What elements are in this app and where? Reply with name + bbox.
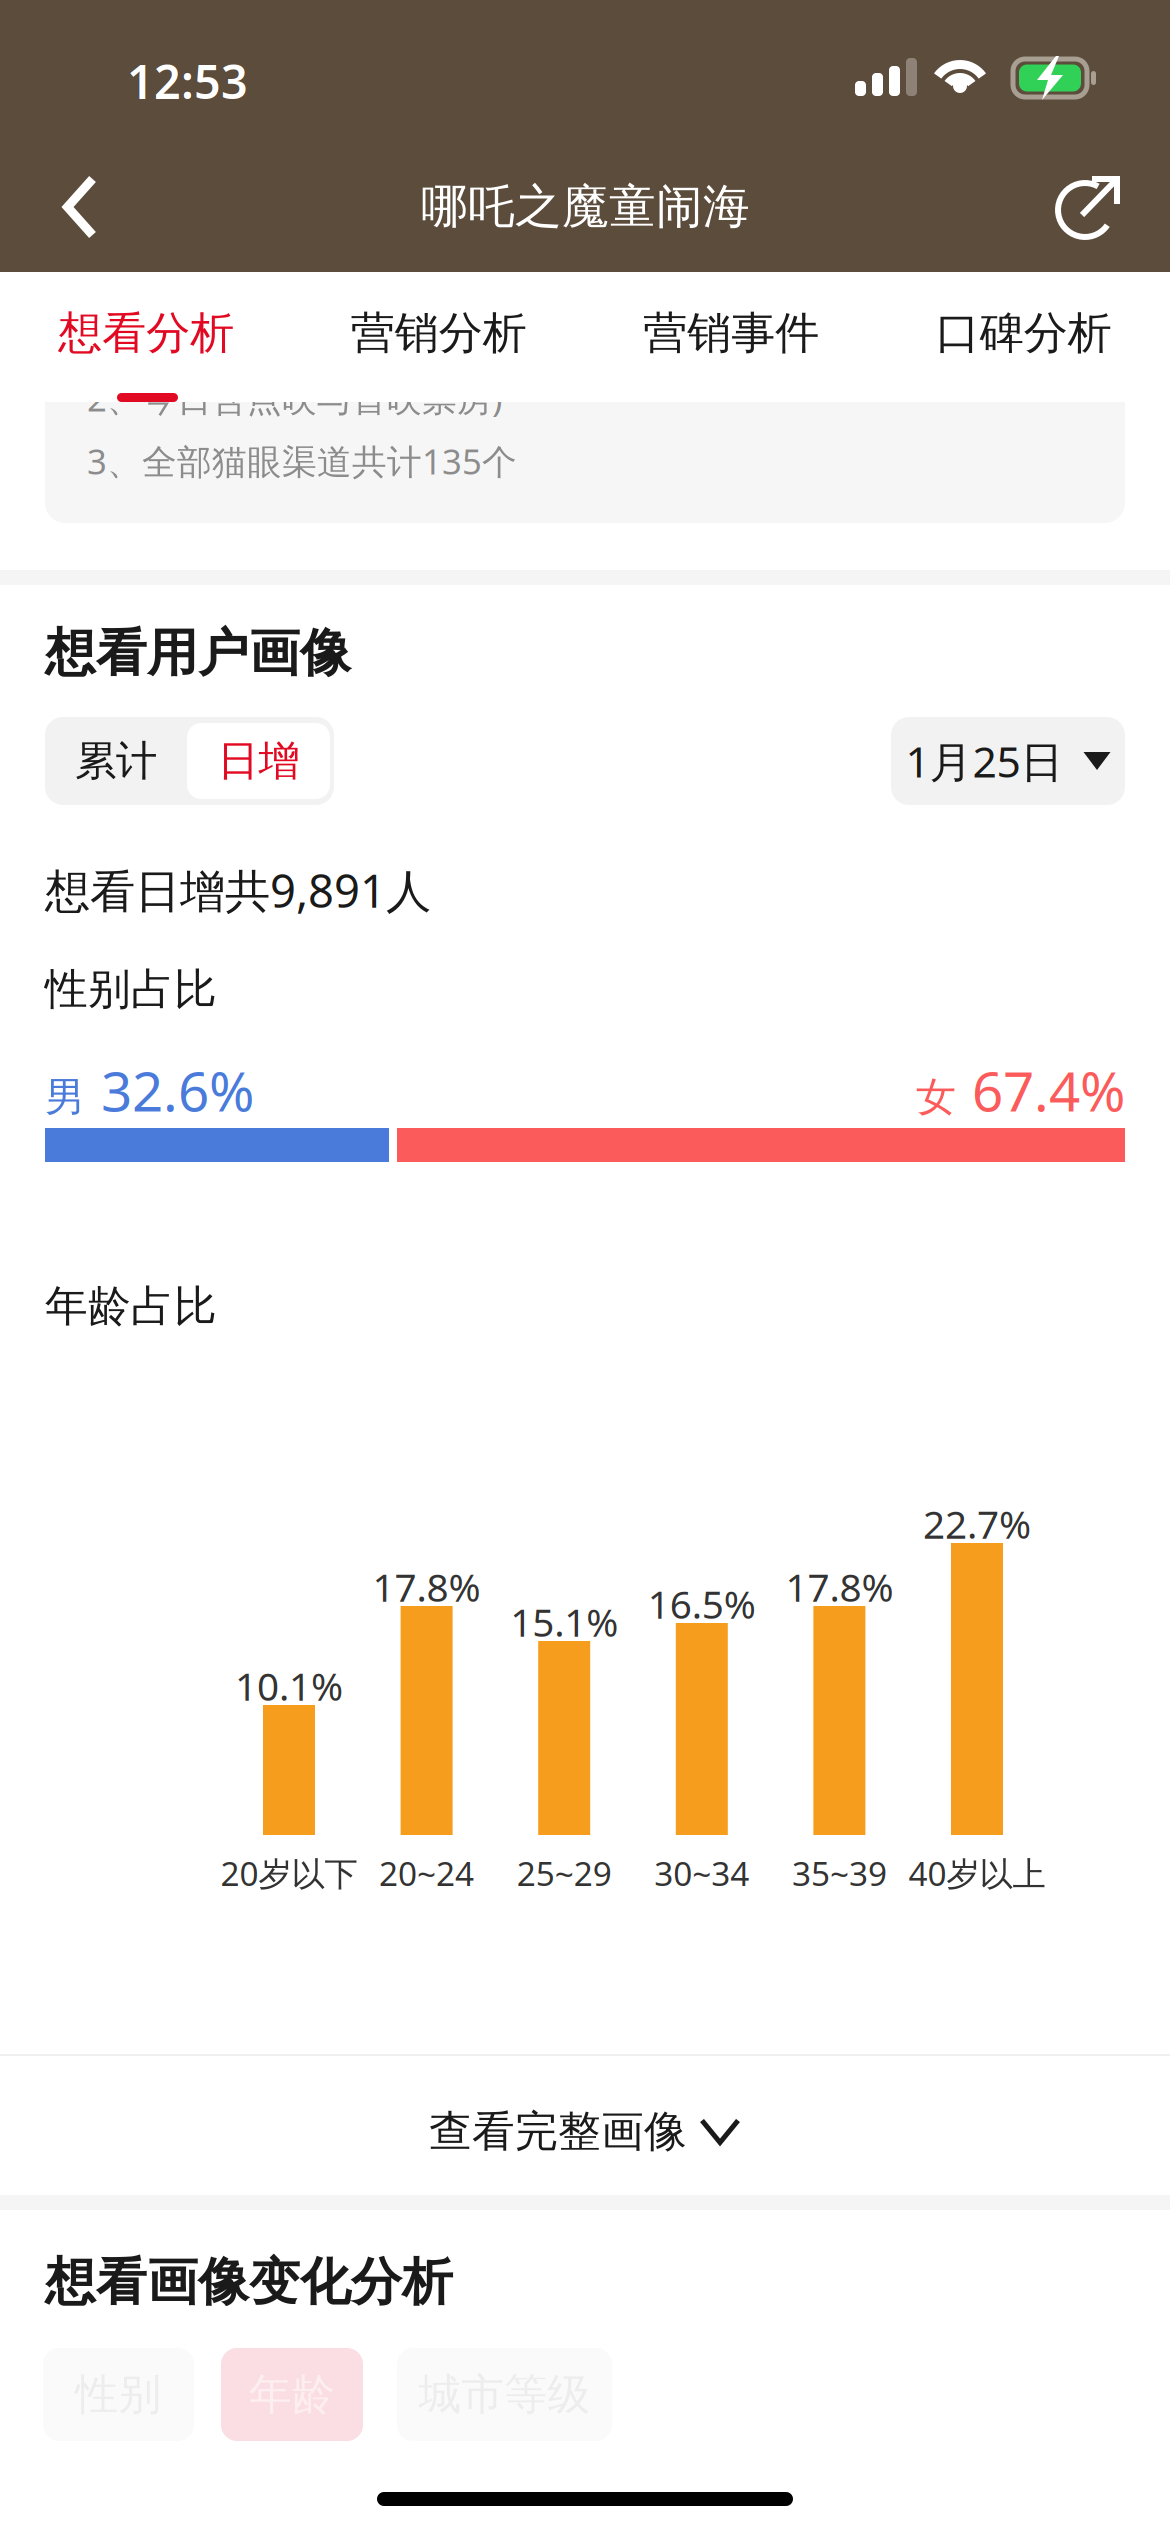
staticText: 12:53 [127, 50, 248, 112]
staticText: 22.7% [923, 1498, 1031, 1549]
button[interactable]: 口碑分析 [877, 272, 1170, 402]
staticText: 年龄 [249, 2368, 335, 2421]
staticText: 32.6% [101, 1054, 254, 1127]
staticText: 30~34 [654, 1851, 749, 1895]
button[interactable]: 城市等级 [397, 2348, 612, 2441]
button[interactable]: 日增 [187, 717, 330, 805]
button[interactable]: 性别 [43, 2348, 194, 2441]
staticText: 想看分析 [58, 306, 234, 360]
button[interactable]: 1月25日 [891, 717, 1125, 805]
staticText: 67.4% [972, 1054, 1125, 1127]
button[interactable]: 营销分析 [292, 272, 585, 402]
staticText: 营销分析 [351, 306, 527, 360]
staticText: 10.1% [235, 1660, 343, 1711]
staticText: 查看完整画像 [429, 2105, 687, 2158]
staticText: 1月25日 [905, 733, 1063, 789]
button[interactable]: 想看分析 [0, 272, 292, 402]
staticText: 哪吒之魔童闹海 [421, 178, 750, 235]
staticText: 35~39 [792, 1851, 887, 1895]
staticText: 想看画像变化分析 [45, 2251, 453, 2313]
staticText: 40岁以上 [908, 1851, 1045, 1895]
staticText: 女 [916, 1073, 956, 1122]
staticText: 25~29 [517, 1851, 612, 1895]
staticText: 口碑分析 [936, 306, 1112, 360]
button[interactable]: 累计 [45, 717, 187, 805]
staticText: 16.5% [648, 1578, 756, 1629]
staticText: 累计 [75, 736, 157, 786]
staticText: 日增 [217, 736, 299, 786]
button[interactable]: 返回 [28, 157, 132, 257]
staticText: 15.1% [510, 1596, 618, 1647]
button[interactable]: 营销事件 [585, 272, 877, 402]
staticText: 3、全部猫眼渠道共计135个 [87, 438, 517, 484]
staticText: 想看日增共9,891人 [45, 860, 431, 920]
staticText: 年龄占比 [45, 1280, 217, 1332]
staticText: 营销事件 [643, 306, 819, 360]
button[interactable]: 年龄 [221, 2348, 363, 2441]
staticText: 2、今日含点映与首映票房) [87, 375, 502, 421]
staticText: 17.8% [373, 1561, 481, 1612]
staticText: 城市等级 [418, 2368, 590, 2421]
staticText: 17.8% [785, 1561, 893, 1612]
button[interactable]: 查看完整画像 [0, 2062, 1170, 2201]
staticText: 男 [45, 1073, 85, 1122]
button[interactable]: 分享 [1038, 156, 1140, 258]
staticText: 20岁以下 [220, 1851, 357, 1895]
staticText: 性别 [75, 2368, 161, 2421]
staticText: 想看用户画像 [45, 622, 351, 684]
staticText: 性别占比 [45, 963, 217, 1015]
staticText: 20~24 [379, 1851, 474, 1895]
